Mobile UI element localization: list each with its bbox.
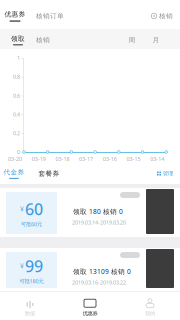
button[interactable]: ¥ bbox=[0, 188, 180, 237]
staticText: 周 bbox=[128, 36, 135, 44]
staticText: ¥ bbox=[20, 261, 24, 270]
staticText: 0.6 bbox=[13, 92, 20, 99]
staticText: 可抵60元 bbox=[21, 221, 42, 228]
staticText: 核销 bbox=[36, 36, 50, 44]
button[interactable]: 管理 bbox=[147, 166, 173, 181]
button[interactable]: 领取 bbox=[9, 31, 27, 49]
button[interactable]: 我的 bbox=[120, 295, 180, 320]
staticText: 03-16 bbox=[103, 155, 117, 163]
staticText: 数据 bbox=[25, 310, 35, 317]
staticText: 03-14 bbox=[150, 155, 164, 163]
staticText: ¥ bbox=[20, 204, 24, 213]
staticText: 套餐券 bbox=[38, 169, 59, 178]
staticText: 优惠券 bbox=[4, 10, 25, 18]
staticText: 0.4 bbox=[13, 111, 20, 118]
button[interactable]: 核销 bbox=[143, 6, 173, 26]
staticText: 可抵180元 bbox=[19, 278, 43, 285]
staticText: 03-20 bbox=[8, 155, 22, 163]
button[interactable]: 数据 bbox=[0, 295, 60, 320]
staticText: 管理 bbox=[163, 170, 173, 177]
button[interactable]: 优惠券 bbox=[60, 295, 120, 320]
staticText: 03-19 bbox=[32, 155, 46, 163]
staticText: 月 bbox=[152, 36, 159, 44]
staticText: 03-17 bbox=[79, 155, 93, 163]
staticText: 0 bbox=[17, 148, 20, 156]
staticText: 2019.03.14-2019.03.20 bbox=[72, 219, 126, 226]
button[interactable]: 优惠券 bbox=[4, 6, 26, 26]
button[interactable]: 核销订单 bbox=[36, 6, 64, 26]
staticText: 我的 bbox=[145, 310, 155, 317]
staticText: 03-18 bbox=[55, 155, 69, 163]
button[interactable]: ¥ bbox=[0, 248, 180, 291]
staticText: 0.8 bbox=[13, 73, 20, 80]
staticText: 核销 bbox=[159, 12, 173, 20]
staticText: 优惠券 bbox=[82, 310, 97, 317]
staticText: 领取 bbox=[11, 35, 25, 43]
staticText: 0.2 bbox=[13, 130, 20, 137]
button[interactable]: 代金券 bbox=[4, 166, 24, 181]
staticText: 2019.03.16-2019.03.22 bbox=[72, 279, 126, 286]
staticText: 03-15 bbox=[126, 155, 140, 163]
button[interactable]: 月 bbox=[150, 31, 162, 49]
button[interactable]: 核销 bbox=[33, 31, 53, 49]
button[interactable]: 周 bbox=[126, 31, 138, 49]
staticText: 99 bbox=[25, 255, 43, 276]
staticText: 60 bbox=[25, 198, 43, 219]
staticText: 代金券 bbox=[3, 168, 24, 176]
staticText: 领取 180 核销 0 bbox=[73, 207, 123, 216]
staticText: 领取 13109 核销 0 bbox=[73, 267, 131, 276]
staticText: 核销订单 bbox=[36, 12, 64, 20]
button[interactable]: 套餐券 bbox=[38, 166, 60, 181]
staticText: 1 bbox=[17, 54, 20, 62]
